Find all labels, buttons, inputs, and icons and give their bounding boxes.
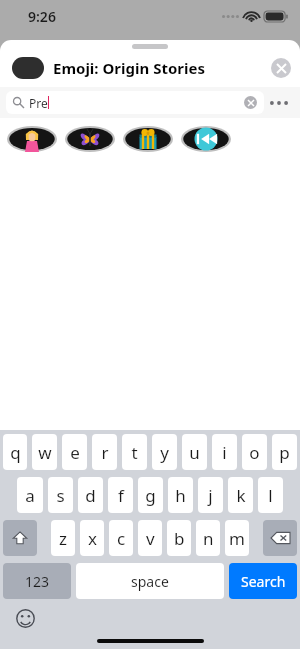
button[interactable]: z (51, 520, 75, 556)
button[interactable]: d (78, 477, 103, 513)
button[interactable]: a (17, 477, 43, 513)
staticText: q (10, 441, 21, 464)
button[interactable]: l (258, 477, 283, 513)
staticText: n (203, 527, 214, 550)
staticText: p (279, 441, 290, 464)
button[interactable]: s (48, 477, 73, 513)
button[interactable]: h (168, 477, 193, 513)
button[interactable]: o (242, 434, 267, 470)
staticText: u (189, 441, 200, 464)
button[interactable]: n (196, 520, 220, 556)
staticText: z (59, 527, 67, 550)
staticText: x (88, 527, 97, 550)
button[interactable]: c (109, 520, 133, 556)
button[interactable]: g (138, 477, 163, 513)
button[interactable]: i (212, 434, 237, 470)
staticText: space (131, 572, 169, 591)
button[interactable]: v (138, 520, 162, 556)
button[interactable]: p (272, 434, 297, 470)
button[interactable]: x (80, 520, 104, 556)
button[interactable]: u (182, 434, 207, 470)
staticText: g (145, 484, 156, 507)
button[interactable]: f (108, 477, 133, 513)
staticText: l (268, 484, 273, 507)
button[interactable]: j (198, 477, 223, 513)
staticText: j (208, 484, 213, 507)
staticText: v (146, 527, 155, 550)
button[interactable]: Pre (6, 91, 264, 114)
staticText: k (236, 484, 246, 507)
button[interactable]: q (3, 434, 27, 470)
staticText: 123 (25, 572, 50, 591)
staticText: m (229, 527, 245, 550)
button[interactable]: r (92, 434, 117, 470)
button[interactable]: Search (229, 563, 297, 599)
button[interactable]: Close (271, 58, 291, 78)
button[interactable]: w (32, 434, 57, 470)
button[interactable]: Person emoji (4, 124, 60, 154)
staticText: Emoji: Origin Stories (53, 58, 205, 78)
staticText: b (174, 527, 185, 550)
button[interactable]: y (152, 434, 177, 470)
button[interactable]: 123 (3, 563, 71, 599)
button[interactable]: space (76, 563, 224, 599)
button[interactable]: Backspace (263, 520, 297, 556)
button[interactable]: k (228, 477, 253, 513)
staticText: o (249, 441, 260, 464)
staticText: c (117, 527, 126, 550)
staticText: e (70, 441, 80, 464)
button[interactable]: Rewind emoji (178, 124, 234, 154)
staticText: Search (241, 572, 286, 591)
staticText: 9:26 (28, 7, 56, 26)
button[interactable]: m (225, 520, 249, 556)
staticText: w (38, 441, 52, 464)
staticText: d (85, 484, 96, 507)
staticText: h (175, 484, 186, 507)
staticText: f (118, 484, 124, 507)
button[interactable]: Clear text (244, 96, 257, 109)
button[interactable]: t (122, 434, 147, 470)
button[interactable]: e (62, 434, 87, 470)
staticText: a (25, 484, 35, 507)
button[interactable]: Shift (3, 520, 37, 556)
staticText: r (101, 441, 109, 464)
staticText: s (56, 484, 65, 507)
staticText: y (160, 441, 169, 464)
button[interactable]: Emoji keyboard (15, 608, 35, 628)
button[interactable]: Gift emoji (120, 124, 176, 154)
button[interactable]: More options (264, 91, 294, 114)
staticText: t (131, 441, 138, 464)
button[interactable]: b (167, 520, 191, 556)
staticText: i (222, 441, 227, 464)
staticText: Pre (29, 95, 48, 111)
button[interactable]: Butterfly emoji (62, 124, 118, 154)
